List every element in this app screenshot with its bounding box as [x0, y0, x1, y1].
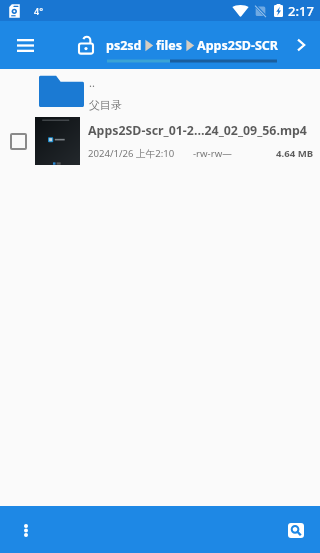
staticText: ps2sd	[106, 37, 142, 54]
staticText: -rw-rw—	[193, 147, 232, 160]
staticText: 4°	[34, 5, 43, 17]
staticText: Apps2SD-SCR	[197, 37, 279, 54]
staticText: files	[156, 37, 183, 54]
staticText: 父目录	[89, 98, 122, 112]
button[interactable]: ..	[0, 69, 320, 117]
staticText: 2:17	[288, 2, 314, 20]
staticText: Apps2SD-scr_01-2…24_02_09_56.mp4	[88, 122, 307, 139]
button[interactable]: Unlock	[75, 34, 97, 56]
button[interactable]: Forward	[288, 32, 314, 58]
staticText: ..	[89, 75, 95, 90]
button[interactable]: Search	[282, 516, 310, 544]
button[interactable]: Select file	[0, 117, 320, 171]
button[interactable]: Select file	[10, 133, 27, 150]
button[interactable]: More options	[12, 516, 40, 544]
staticText: 4.64 MB	[276, 147, 314, 160]
button[interactable]: Menu	[9, 29, 41, 61]
staticText: 2024/1/26 上午2:10	[88, 147, 175, 160]
